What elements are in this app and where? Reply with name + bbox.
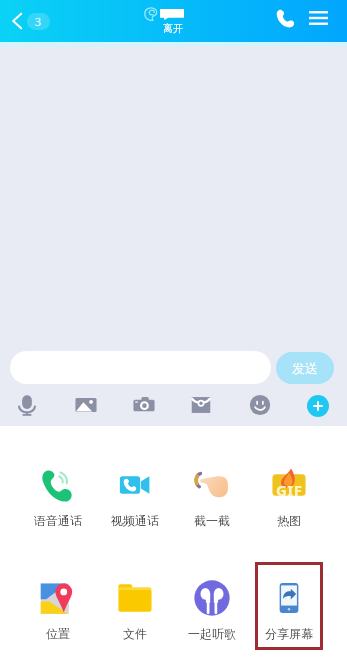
button[interactable]: Camera (131, 392, 157, 418)
button[interactable]: Message input (10, 351, 271, 384)
button[interactable]: Emoji (247, 392, 273, 418)
button[interactable]: Sticker (188, 392, 214, 418)
button[interactable]: Back (6, 4, 56, 38)
staticText: 热图 (277, 513, 301, 528)
staticText: 一起听歌 (188, 626, 236, 641)
staticText: 语音通话 (34, 513, 82, 528)
staticText: 离开 (163, 22, 183, 35)
staticText: 截一截 (194, 513, 230, 528)
button[interactable]: More (307, 395, 329, 417)
button[interactable]: 截一截 (177, 463, 247, 549)
button[interactable]: 发送 (276, 352, 334, 384)
button[interactable]: 语音通话 (23, 463, 93, 549)
button[interactable]: Photo (73, 392, 99, 418)
button[interactable]: Away status (143, 0, 191, 41)
button[interactable]: 分享屏幕 (254, 576, 324, 660)
button[interactable]: Voice message (14, 392, 40, 418)
staticText: 位置 (46, 626, 70, 641)
staticText: 分享屏幕 (265, 626, 313, 641)
staticText: 发送 (292, 360, 318, 376)
button[interactable]: Call (271, 4, 299, 32)
button[interactable]: Menu (304, 4, 332, 32)
button[interactable]: 位置 (23, 576, 93, 660)
staticText: GIF (276, 480, 303, 500)
staticText: 文件 (123, 626, 147, 641)
button[interactable]: GIF (254, 463, 324, 549)
button[interactable]: 视频通话 (100, 463, 170, 549)
button[interactable]: 一起听歌 (177, 576, 247, 660)
button[interactable]: 文件 (100, 576, 170, 660)
staticText: 视频通话 (111, 513, 159, 528)
staticText: 3 (35, 14, 42, 29)
